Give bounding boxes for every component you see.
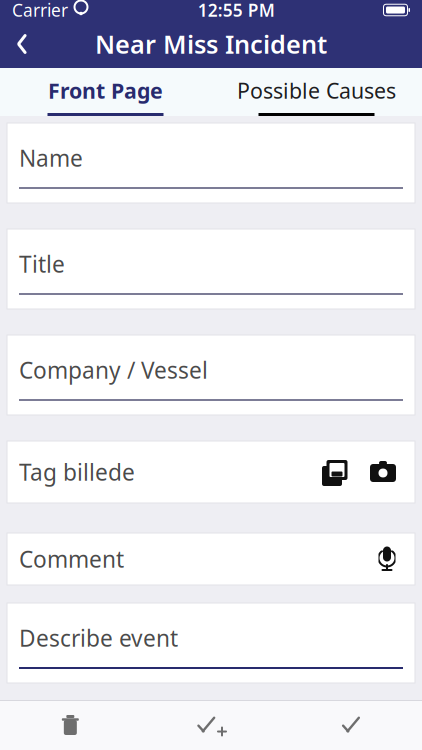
staticText: Comment	[19, 544, 124, 574]
staticText: Name	[19, 143, 83, 173]
staticText: Title	[19, 249, 65, 279]
staticText: Near Miss Incident	[95, 27, 327, 61]
staticText: Tag billede	[19, 457, 135, 487]
staticText: Front Page	[48, 76, 163, 105]
button[interactable]: Save	[281, 701, 422, 750]
staticText: Carrier	[12, 0, 68, 21]
button[interactable]: Back	[0, 22, 44, 66]
staticText: Describe event	[19, 623, 178, 653]
staticText: 12:55 PM	[198, 0, 275, 21]
button[interactable]: Dictate comment	[365, 537, 409, 581]
button[interactable]: Front Page	[0, 68, 211, 116]
staticText: Possible Causes	[237, 76, 396, 105]
staticText: Company / Vessel	[19, 355, 208, 385]
button[interactable]: Take photo	[359, 448, 407, 496]
button[interactable]: Choose photo from library	[311, 448, 359, 496]
button[interactable]: Save and add another	[141, 701, 281, 750]
button[interactable]: Possible Causes	[211, 68, 422, 116]
button[interactable]: Delete	[0, 701, 141, 750]
